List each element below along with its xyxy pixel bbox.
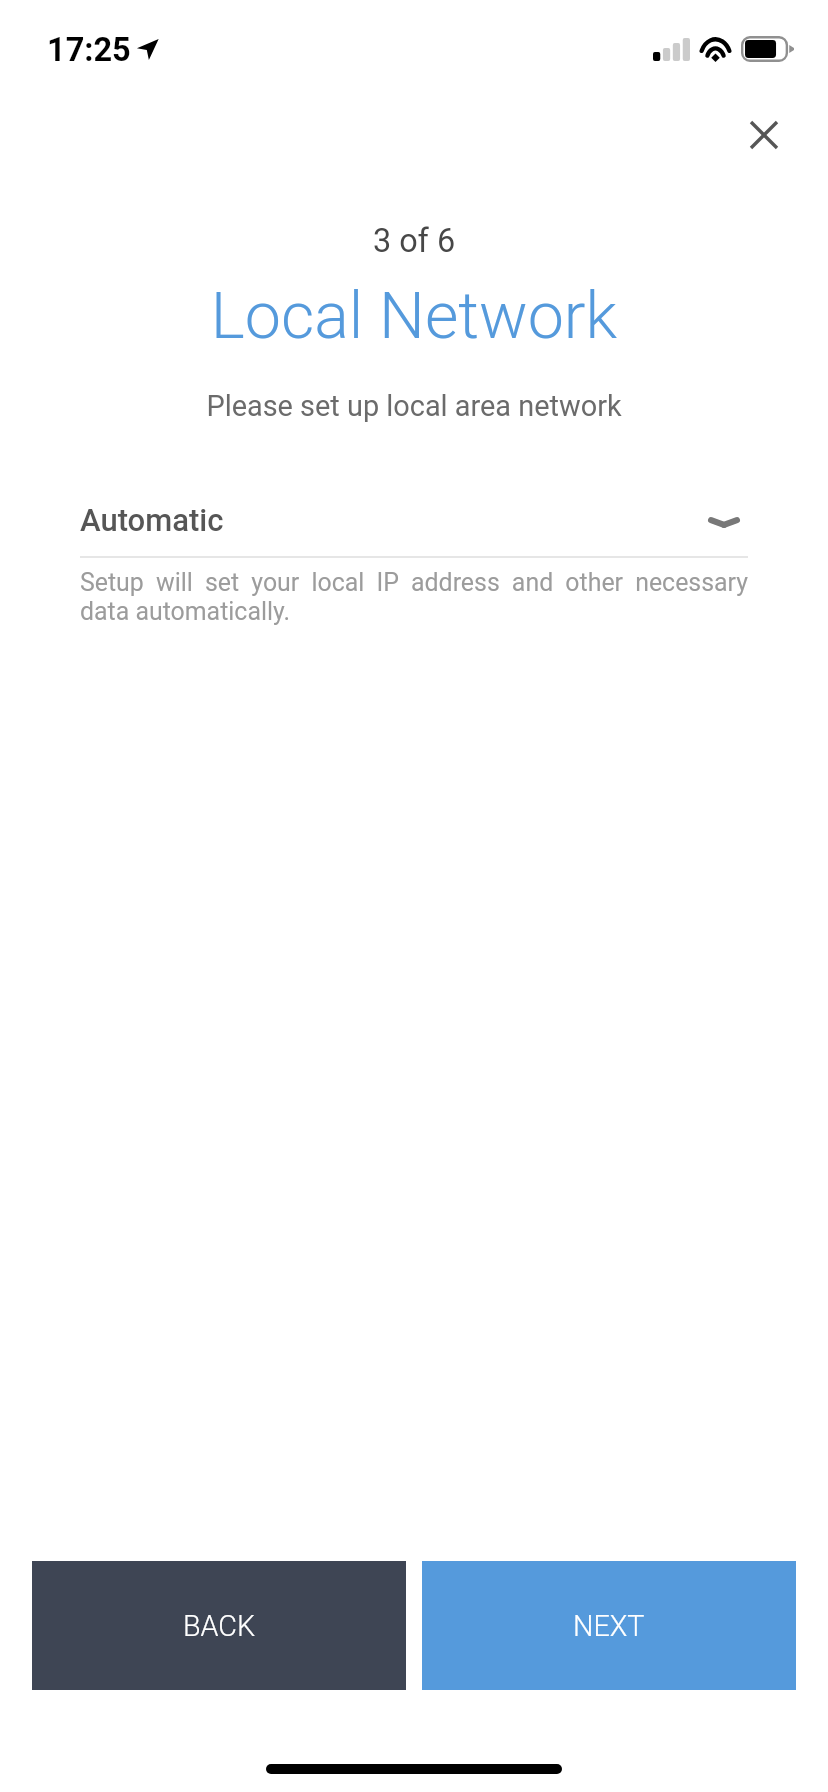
button[interactable]: Automatic bbox=[80, 494, 748, 546]
staticText: Please set up local area network bbox=[0, 389, 828, 423]
staticText: Setup will set your local IP address and… bbox=[80, 568, 748, 626]
staticText: NEXT bbox=[573, 1609, 645, 1643]
button[interactable]: BACK bbox=[32, 1561, 406, 1690]
staticText: Local Network bbox=[0, 278, 828, 354]
staticText: 17:25 bbox=[47, 31, 131, 69]
button[interactable]: Close bbox=[728, 99, 800, 171]
staticText: BACK bbox=[183, 1609, 256, 1643]
button[interactable]: NEXT bbox=[422, 1561, 796, 1690]
staticText: 3 of 6 bbox=[0, 222, 828, 260]
staticText: Automatic bbox=[80, 502, 224, 538]
